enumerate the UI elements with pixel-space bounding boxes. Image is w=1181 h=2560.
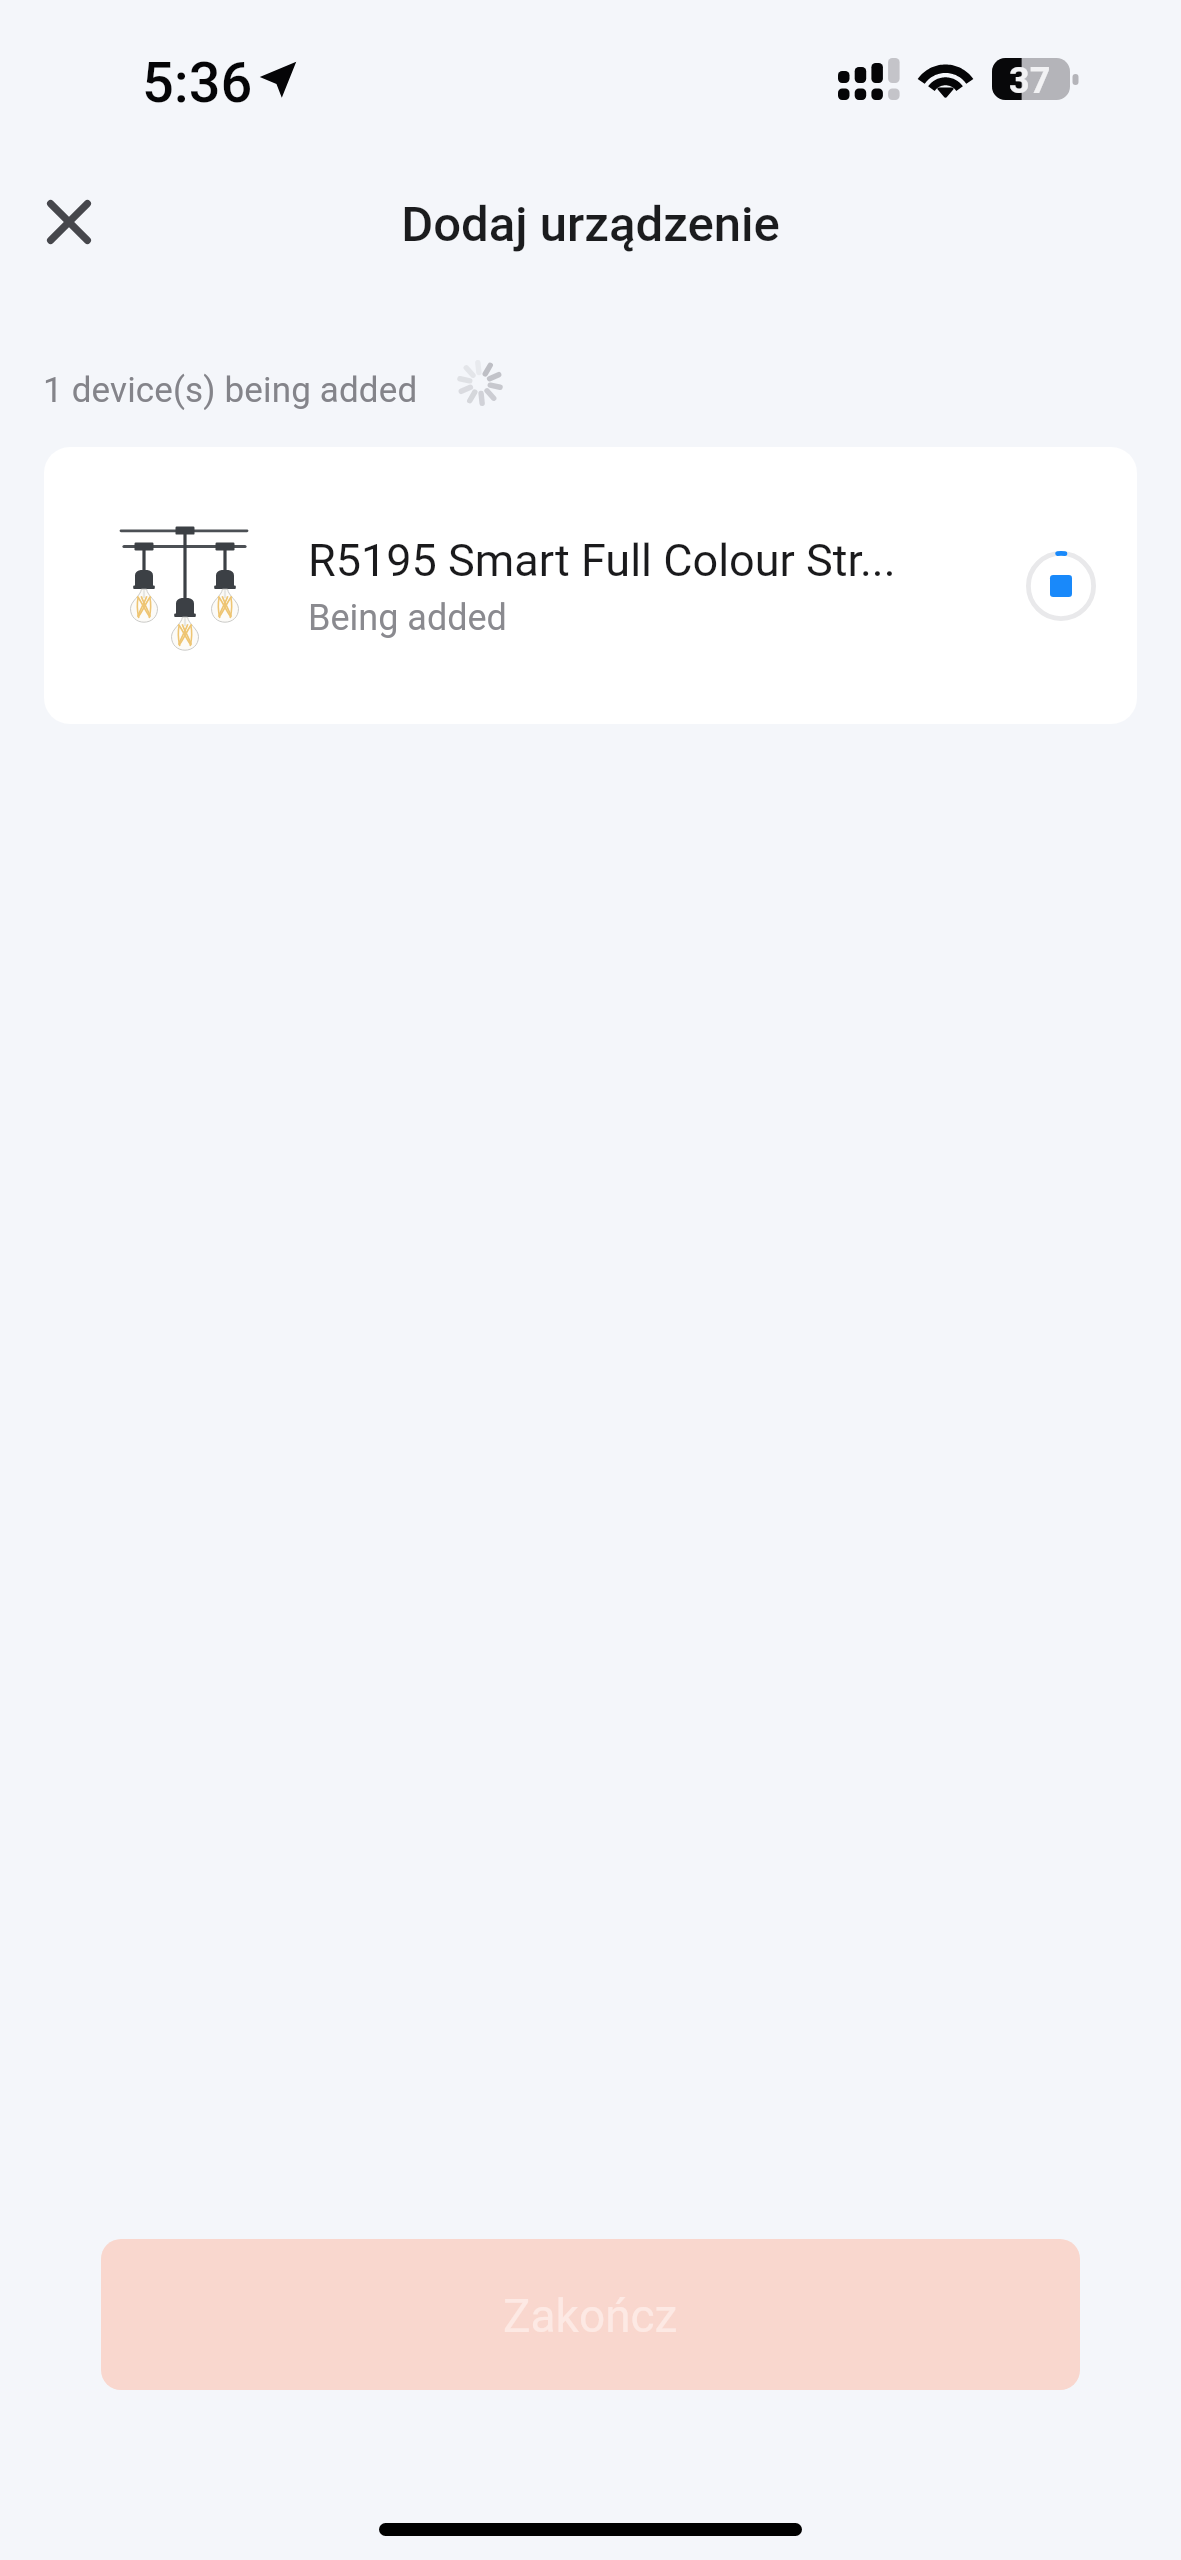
staticText: Zakończ xyxy=(503,2289,678,2343)
button[interactable]: R5195 Smart Full Colour Str... xyxy=(44,447,1137,724)
staticText: Being added xyxy=(308,597,507,639)
staticText: 5:36 xyxy=(142,50,253,116)
button[interactable]: Close xyxy=(25,178,113,266)
staticText: Dodaj urządzenie xyxy=(0,196,1181,253)
staticText: 37 xyxy=(1009,60,1051,102)
button[interactable]: Zakończ xyxy=(101,2239,1080,2390)
staticText: 1 device(s) being added xyxy=(43,370,418,411)
staticText: R5195 Smart Full Colour Str... xyxy=(308,534,896,587)
button[interactable]: Adding device xyxy=(1009,531,1113,641)
